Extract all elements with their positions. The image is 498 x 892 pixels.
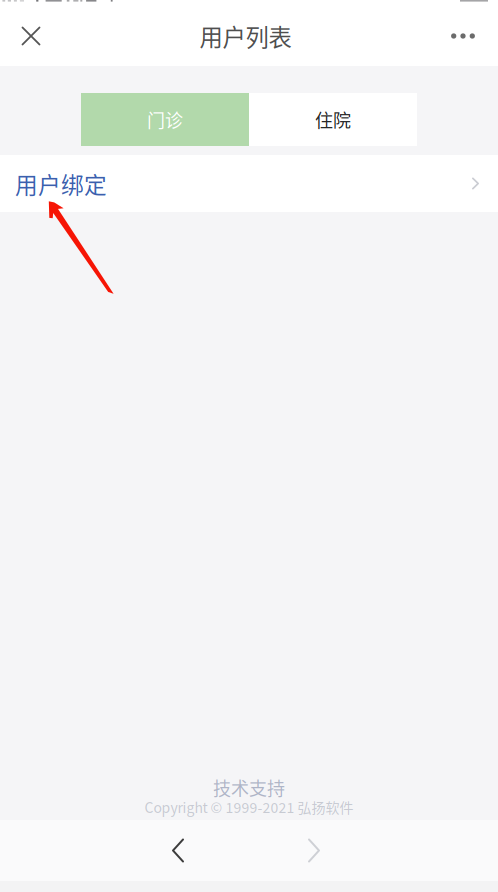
- button[interactable]: 用户绑定: [0, 155, 498, 212]
- staticText: 技术支持: [213, 774, 285, 801]
- button[interactable]: 住院: [249, 93, 417, 146]
- staticText: 用户列表: [199, 19, 291, 53]
- button[interactable]: More: [428, 11, 498, 61]
- button[interactable]: Forward: [279, 820, 349, 881]
- button[interactable]: 技术支持: [213, 776, 285, 799]
- staticText: 用户绑定: [15, 167, 107, 200]
- staticText: 门诊: [147, 106, 183, 133]
- button[interactable]: 门诊: [81, 93, 249, 146]
- staticText: 住院: [315, 106, 351, 133]
- staticText: Copyright © 1999-2021 弘扬软件: [144, 797, 353, 817]
- button[interactable]: Close: [0, 11, 62, 61]
- button[interactable]: Back: [143, 820, 213, 881]
